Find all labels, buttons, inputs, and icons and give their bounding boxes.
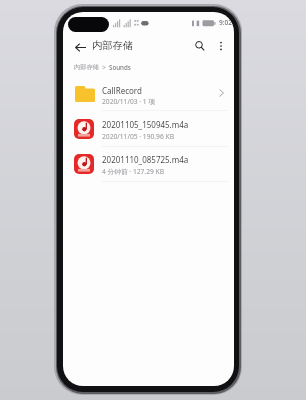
staticText: 2020/11/05 · 190.96 KB bbox=[102, 132, 174, 141]
staticText: 4 分钟前 · 127.29 KB bbox=[102, 167, 165, 176]
button[interactable]: CallRecord bbox=[63, 77, 234, 111]
staticText: 内部存储 bbox=[92, 39, 134, 52]
button[interactable]: Search bbox=[189, 35, 211, 57]
staticText: 20201105_150945.m4a bbox=[102, 119, 189, 130]
staticText: 内部存储 bbox=[74, 63, 99, 71]
staticText: 2020/11/03 · 1 项 bbox=[102, 97, 156, 106]
staticText: 9:02 bbox=[219, 18, 233, 27]
button[interactable]: Back bbox=[68, 35, 92, 59]
button[interactable]: More options bbox=[210, 35, 232, 57]
button[interactable]: 20201110_085725.m4a bbox=[63, 147, 234, 182]
button[interactable]: 20201105_150945.m4a bbox=[63, 112, 234, 147]
staticText: 20201110_085725.m4a bbox=[102, 154, 189, 165]
staticText: Sounds bbox=[109, 63, 131, 71]
staticText: CallRecord bbox=[102, 85, 142, 96]
staticText: > bbox=[99, 63, 109, 71]
